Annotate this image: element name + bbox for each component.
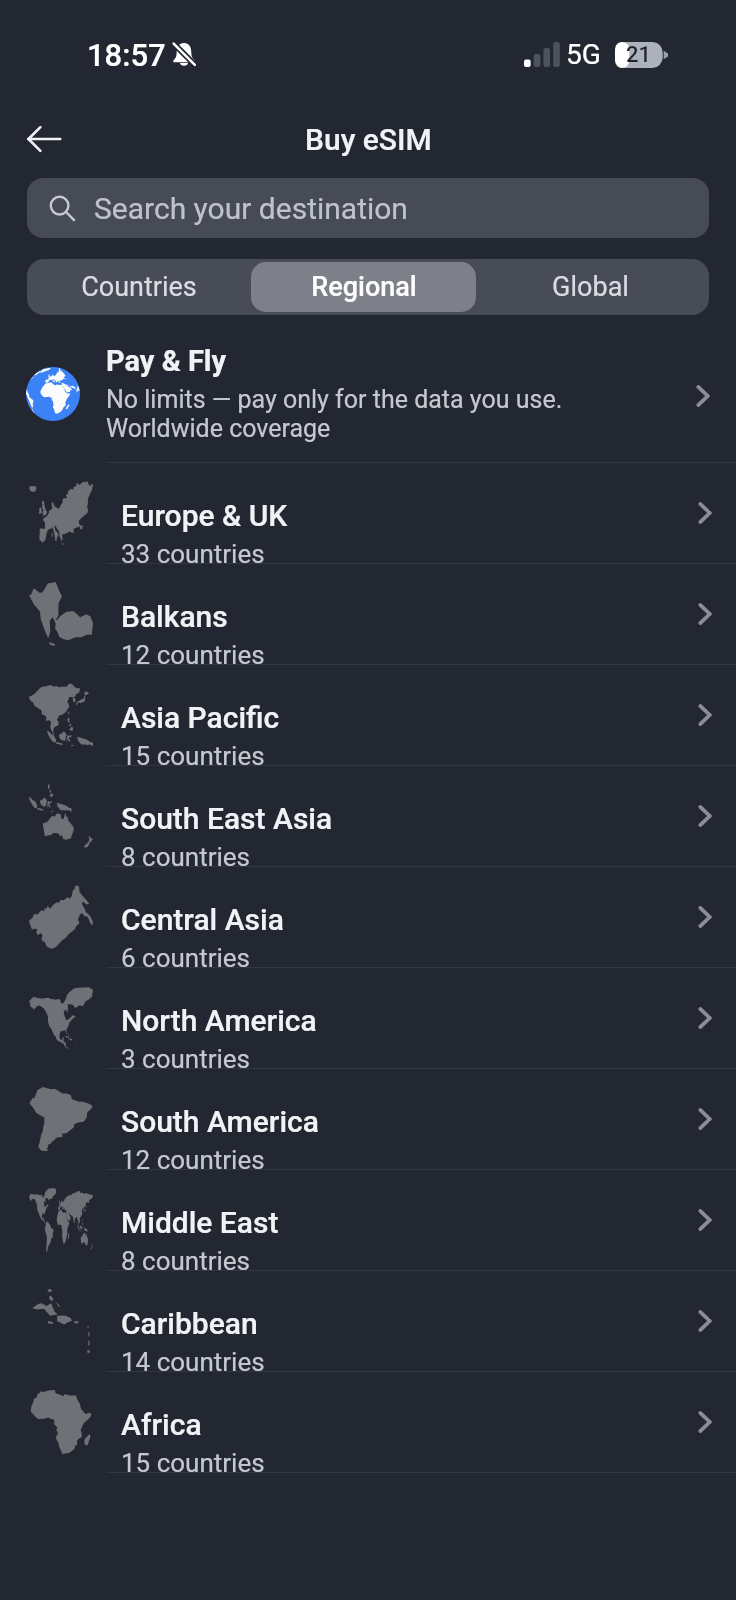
staticText: South East Asia	[121, 801, 333, 836]
button[interactable]: Regional	[251, 262, 476, 312]
staticText: No limits — pay only for the data you us…	[106, 385, 563, 414]
button[interactable]: Middle East	[0, 1170, 736, 1270]
staticText: 12 countries	[121, 640, 265, 664]
staticText: 8 countries	[121, 842, 251, 866]
staticText: Central Asia	[121, 902, 284, 937]
button[interactable]: Countries	[27, 262, 251, 312]
button[interactable]: Europe & UK	[0, 463, 736, 563]
staticText: Countries	[81, 271, 197, 303]
button[interactable]: South East Asia	[0, 766, 736, 866]
button[interactable]: Africa	[0, 1372, 736, 1472]
staticText: 8 countries	[121, 1246, 251, 1270]
staticText: Search your destination	[94, 191, 408, 226]
button[interactable]: Pay & Fly	[0, 315, 736, 462]
staticText: Middle East	[121, 1205, 279, 1240]
staticText: 6 countries	[121, 943, 251, 967]
staticText: 14 countries	[121, 1347, 265, 1371]
button[interactable]: Asia Pacific	[0, 665, 736, 765]
staticText: 33 countries	[121, 539, 265, 563]
button[interactable]: Back	[16, 111, 72, 167]
button[interactable]: Global	[476, 262, 705, 312]
staticText: Balkans	[121, 599, 228, 634]
staticText: North America	[121, 1003, 317, 1038]
staticText: Regional	[311, 271, 417, 303]
button[interactable]: Balkans	[0, 564, 736, 664]
button[interactable]: North America	[0, 968, 736, 1068]
staticText: 15 countries	[121, 741, 265, 765]
staticText: Asia Pacific	[121, 700, 280, 735]
staticText: Worldwide coverage	[106, 414, 331, 443]
staticText: 5G	[566, 38, 601, 71]
staticText: Africa	[121, 1407, 202, 1442]
button[interactable]: Central Asia	[0, 867, 736, 967]
staticText: 12 countries	[121, 1145, 265, 1169]
staticText: South America	[121, 1104, 319, 1139]
staticText: Europe & UK	[121, 498, 288, 533]
staticText: 21	[626, 42, 652, 68]
staticText: Buy eSIM	[305, 122, 432, 157]
staticText: Pay & Fly	[106, 344, 227, 378]
button[interactable]: Search your destination	[27, 178, 709, 238]
button[interactable]: South America	[0, 1069, 736, 1169]
staticText: 3 countries	[121, 1044, 251, 1068]
staticText: Global	[552, 271, 629, 303]
staticText: 18:57	[87, 37, 166, 73]
staticText: Caribbean	[121, 1306, 258, 1341]
staticText: 15 countries	[121, 1448, 265, 1472]
button[interactable]: Caribbean	[0, 1271, 736, 1371]
